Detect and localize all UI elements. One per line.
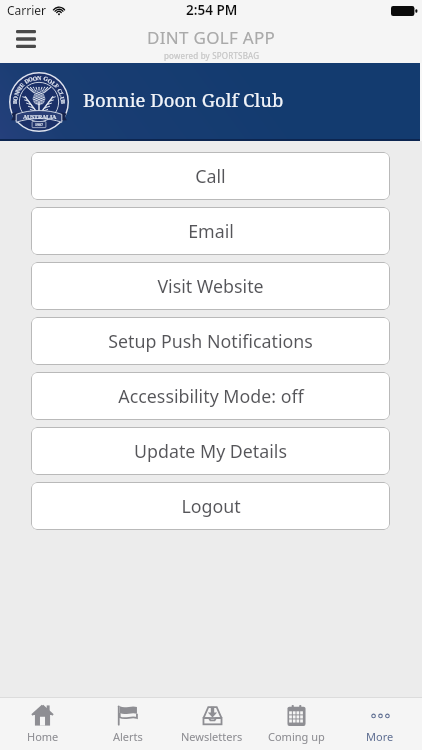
button[interactable]: More — [338, 698, 422, 750]
button[interactable]: Setup Push Notifications — [31, 317, 390, 365]
staticText: Accessibility Mode: off — [118, 384, 304, 408]
button[interactable]: Accessibility Mode: off — [31, 372, 390, 420]
staticText: Home — [27, 729, 59, 744]
staticText: Coming up — [268, 729, 325, 744]
button[interactable]: Call — [31, 152, 390, 200]
button[interactable]: Alerts — [85, 698, 170, 750]
button[interactable]: Newsletters — [170, 698, 254, 750]
staticText: Bonnie Doon Golf Club — [83, 87, 284, 112]
staticText: Update My Details — [134, 439, 287, 463]
staticText: Call — [195, 164, 226, 188]
button[interactable]: Open navigation menu — [6, 22, 46, 62]
staticText: Newsletters — [181, 729, 243, 744]
button[interactable]: Coming up — [254, 698, 338, 750]
staticText: DINT GOLF APP — [147, 26, 276, 49]
button[interactable]: Email — [31, 207, 390, 255]
staticText: Email — [188, 219, 234, 243]
button[interactable]: Home — [0, 698, 85, 750]
button[interactable]: Logout — [31, 482, 390, 530]
staticText: 2:54 PM — [186, 1, 238, 19]
staticText: Logout — [181, 494, 241, 518]
staticText: powered by SPORTSBAG — [164, 50, 260, 61]
staticText: Visit Website — [157, 274, 264, 298]
staticText: Carrier — [7, 2, 47, 18]
staticText: Setup Push Notifications — [108, 329, 313, 353]
button[interactable]: Update My Details — [31, 427, 390, 475]
staticText: Alerts — [113, 729, 143, 744]
button[interactable]: Visit Website — [31, 262, 390, 310]
staticText: More — [366, 729, 394, 744]
